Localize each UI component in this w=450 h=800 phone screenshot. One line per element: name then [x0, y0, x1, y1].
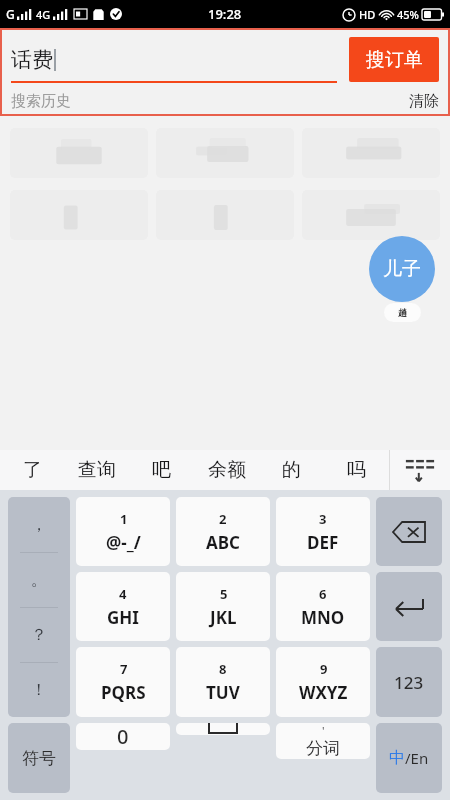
staticText: JKL — [210, 606, 237, 629]
button[interactable]: 吗 — [324, 450, 389, 490]
staticText: ' — [322, 723, 325, 738]
staticText: TUV — [206, 681, 240, 704]
staticText: 19:28 — [208, 5, 242, 23]
staticText: 1 — [120, 510, 128, 528]
button[interactable]: 中 — [376, 723, 442, 793]
button[interactable] — [302, 128, 440, 178]
staticText: WXYZ — [299, 681, 348, 704]
button[interactable]: 的 — [259, 450, 324, 490]
staticText: DEF — [307, 531, 339, 554]
button[interactable]: 7 — [76, 647, 170, 717]
button[interactable]: 查询 — [64, 450, 129, 490]
staticText: 查询 — [78, 458, 116, 482]
staticText: G — [6, 6, 15, 22]
staticText: 8 — [219, 660, 227, 678]
staticText: ？ — [31, 625, 47, 645]
staticText: 余额 — [208, 458, 246, 482]
button[interactable]: 4 — [76, 572, 170, 641]
staticText: PQRS — [101, 681, 146, 704]
staticText: 清除 — [409, 92, 439, 111]
staticText: 45% — [397, 7, 419, 22]
staticText: 趟 — [398, 307, 407, 318]
staticText: 4 — [119, 585, 127, 603]
staticText: 符号 — [22, 748, 56, 769]
staticText: 。 — [31, 570, 47, 590]
staticText: 吗 — [347, 458, 366, 482]
button[interactable]: 退格 — [376, 497, 442, 566]
button[interactable] — [302, 190, 440, 240]
staticText: 中 — [389, 748, 405, 768]
staticText: 儿子 — [383, 257, 421, 281]
button[interactable]: 123 — [376, 647, 442, 717]
button[interactable]: 6 — [276, 572, 370, 641]
button[interactable] — [156, 128, 294, 178]
button[interactable]: 符号 — [8, 723, 70, 793]
staticText: @-_/ — [106, 531, 141, 554]
button[interactable]: 1 — [76, 497, 170, 566]
button[interactable]: 5 — [176, 572, 270, 641]
button[interactable]: 2 — [176, 497, 270, 566]
staticText: 了 — [23, 458, 42, 482]
button[interactable]: 吧 — [129, 450, 194, 490]
button[interactable]: ' — [276, 723, 370, 759]
staticText: ABC — [206, 531, 240, 554]
button[interactable]: 清除 — [409, 92, 439, 111]
button[interactable]: ， — [8, 497, 70, 717]
staticText: 0 — [117, 723, 129, 750]
button[interactable]: 余额 — [194, 450, 259, 490]
staticText: 话费 — [11, 47, 53, 73]
staticText: 123 — [394, 671, 424, 694]
button[interactable]: 0 — [76, 723, 170, 750]
staticText: 搜订单 — [366, 48, 423, 72]
staticText: GHI — [107, 606, 139, 629]
button[interactable]: 回车 — [376, 572, 442, 641]
button[interactable]: 展开候选 — [390, 450, 450, 490]
staticText: ， — [31, 515, 47, 535]
button[interactable]: 空格 — [176, 723, 270, 735]
staticText: 的 — [282, 458, 301, 482]
staticText: 吧 — [152, 458, 171, 482]
button[interactable]: 8 — [176, 647, 270, 717]
staticText: 6 — [319, 585, 327, 603]
staticText: HD — [359, 7, 376, 22]
staticText: MNO — [301, 606, 345, 629]
button[interactable]: 搜订单 — [349, 37, 439, 82]
staticText: 2 — [219, 510, 227, 528]
staticText: 3 — [319, 510, 327, 528]
button[interactable]: 9 — [276, 647, 370, 717]
staticText: 分词 — [306, 738, 340, 759]
button[interactable]: 悬浮助手 儿子 — [368, 236, 436, 322]
button[interactable]: 3 — [276, 497, 370, 566]
staticText: 5 — [220, 585, 228, 603]
button[interactable] — [10, 128, 148, 178]
button[interactable]: 了 — [0, 450, 64, 490]
button[interactable]: 话费 — [11, 37, 337, 83]
staticText: 7 — [120, 660, 128, 678]
staticText: ！ — [31, 680, 47, 700]
staticText: 4G — [36, 7, 51, 22]
staticText: 搜索历史 — [11, 92, 71, 111]
staticText: /En — [405, 748, 429, 768]
staticText: 9 — [320, 660, 328, 678]
